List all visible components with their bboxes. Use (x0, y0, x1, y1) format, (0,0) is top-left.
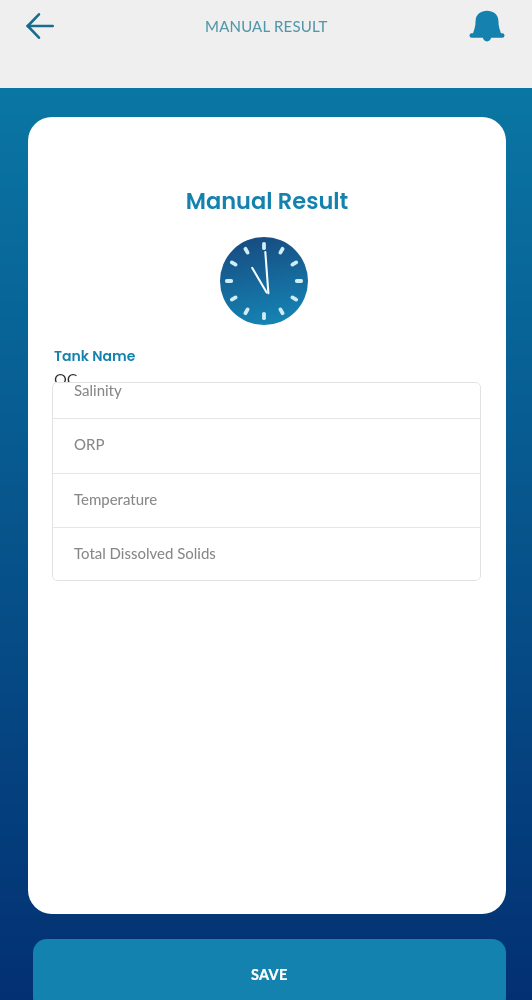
button[interactable]: SAVE (33, 939, 506, 1000)
staticText: MANUAL RESULT (205, 17, 328, 35)
staticText: Tank Name (54, 346, 136, 366)
staticText: QC (54, 369, 78, 388)
staticText: Salinity (74, 382, 122, 399)
staticText: Manual Result (28, 185, 506, 216)
button[interactable]: Notifications (463, 0, 511, 48)
staticText: ORP (74, 435, 105, 453)
staticText: SAVE (251, 966, 288, 983)
button[interactable]: Back (16, 2, 64, 50)
button[interactable]: Total Dissolved Solids (52, 527, 481, 581)
button[interactable]: Temperature (52, 473, 481, 528)
staticText: Temperature (74, 490, 158, 508)
button[interactable]: ORP (52, 418, 481, 473)
button[interactable]: Salinity (52, 382, 481, 419)
staticText: Total Dissolved Solids (74, 544, 216, 562)
